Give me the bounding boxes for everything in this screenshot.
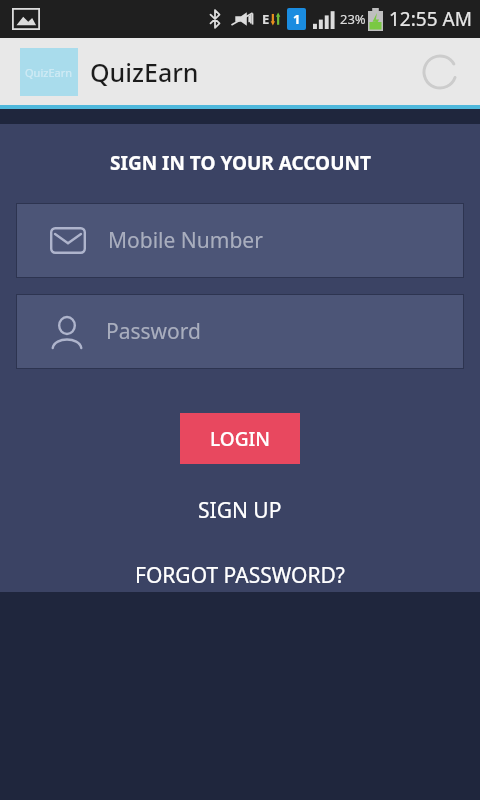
button[interactable]: FORGOT PASSWORD?: [111, 555, 369, 592]
button[interactable]: LOGIN: [180, 413, 300, 464]
button[interactable]: QuizEarn logo: [20, 48, 78, 96]
staticText: LOGIN: [210, 426, 270, 452]
staticText: FORGOT PASSWORD?: [135, 561, 345, 586]
staticText: Password: [106, 317, 201, 346]
staticText: 23%: [340, 10, 366, 28]
staticText: QuizEarn: [90, 55, 199, 89]
staticText: Mobile Number: [108, 226, 263, 255]
staticText: QuizEarn: [25, 65, 73, 80]
button[interactable]: Mobile Number: [16, 203, 464, 278]
staticText: E: [262, 10, 270, 28]
staticText: 1: [293, 10, 301, 28]
button[interactable]: Password: [16, 294, 464, 369]
staticText: SIGN UP: [198, 496, 282, 525]
button[interactable]: SIGN UP: [174, 490, 306, 531]
staticText: 12:55 AM: [389, 6, 472, 32]
other: Loading: [422, 54, 458, 90]
staticText: SIGN IN TO YOUR ACCOUNT: [110, 150, 371, 176]
